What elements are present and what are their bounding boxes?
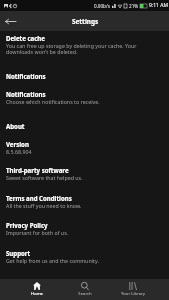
staticText: Sweet software that helped us. <box>6 174 83 181</box>
staticText: All the stuff you need to know. <box>6 202 82 209</box>
button[interactable]: Home <box>12 279 61 300</box>
staticText: Notifications <box>6 72 46 80</box>
button[interactable]: Version <box>0 142 169 168</box>
button[interactable]: Back <box>0 11 21 31</box>
staticText: Terms and Conditions <box>6 194 72 202</box>
staticText: Choose which notifications to receive. <box>6 98 100 105</box>
button[interactable]: Third-party software <box>0 168 169 196</box>
staticText: Get help from us and the community. <box>6 257 99 264</box>
staticText: Delete cache <box>6 34 45 42</box>
staticText: Your Library <box>121 291 145 297</box>
staticText: Version <box>6 140 29 148</box>
button[interactable]: Delete cache <box>0 36 169 74</box>
staticText: 0.00b/s <box>94 3 110 9</box>
button[interactable]: Terms and Conditions <box>0 196 169 223</box>
staticText: 8.5.68.904 <box>6 148 32 155</box>
staticText: Home <box>31 291 43 297</box>
button[interactable]: Your Library <box>109 279 157 300</box>
staticText: About <box>6 122 25 130</box>
staticText: Third-party software <box>6 166 69 174</box>
button[interactable]: Notifications <box>0 92 169 124</box>
button[interactable]: Search <box>61 279 109 300</box>
staticText: Search <box>78 291 92 297</box>
button[interactable]: Privacy Policy <box>0 223 169 251</box>
staticText: 9:11 AM <box>149 2 168 9</box>
staticText: 21% <box>129 3 139 9</box>
staticText: Privacy Policy <box>6 221 48 229</box>
button[interactable]: Support <box>0 251 169 279</box>
staticText: Settings <box>72 17 99 26</box>
staticText: Important for both of us. <box>6 229 69 236</box>
staticText: Support <box>6 249 31 257</box>
staticText: Notifications <box>6 90 46 98</box>
staticText: You can free up storage by deleting your… <box>6 42 137 55</box>
